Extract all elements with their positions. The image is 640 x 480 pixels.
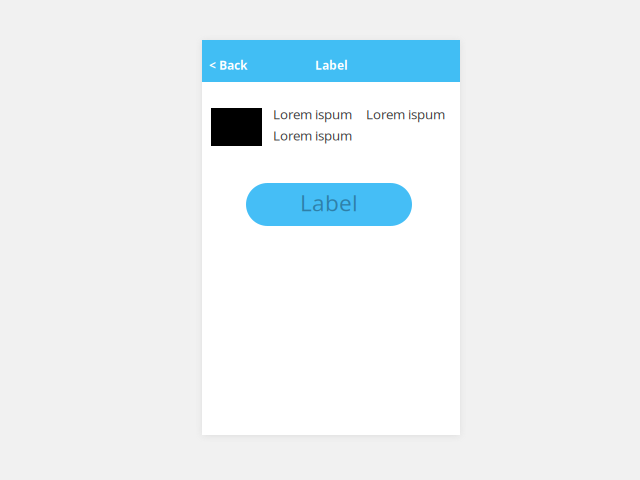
- staticText: Lorem ispum: [273, 105, 352, 123]
- button[interactable]: < Back: [202, 40, 259, 82]
- staticText: Lorem ispum: [273, 126, 352, 144]
- button[interactable]: Label: [246, 183, 412, 226]
- staticText: Label: [300, 187, 358, 218]
- staticText: < Back: [209, 57, 247, 73]
- staticText: Lorem ispum: [366, 105, 445, 123]
- staticText: Label: [315, 57, 348, 73]
